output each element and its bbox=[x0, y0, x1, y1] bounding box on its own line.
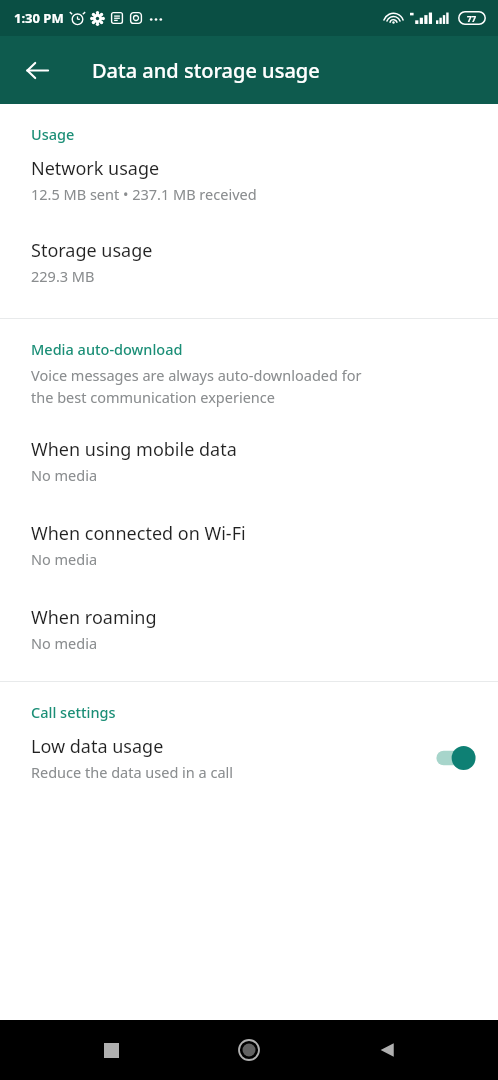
button[interactable]: When roaming bbox=[0, 603, 498, 655]
staticText: Storage usage bbox=[31, 238, 153, 263]
staticText: No media bbox=[31, 633, 98, 653]
button[interactable]: When connected on Wi-Fi bbox=[0, 519, 498, 571]
button[interactable]: When using mobile data bbox=[0, 435, 498, 487]
staticText: Usage bbox=[31, 124, 75, 144]
staticText: When connected on Wi-Fi bbox=[31, 521, 246, 546]
staticText: When using mobile data bbox=[31, 437, 237, 462]
staticText: Call settings bbox=[31, 702, 116, 722]
staticText: 12.5 MB sent • 237.1 MB received bbox=[31, 184, 257, 204]
staticText: No media bbox=[31, 549, 98, 569]
button[interactable]: Network usage bbox=[0, 154, 498, 206]
staticText: When roaming bbox=[31, 605, 157, 630]
button[interactable]: Back bbox=[360, 1023, 414, 1077]
staticText: 77 bbox=[467, 13, 477, 24]
staticText: Voice messages are always auto-downloade… bbox=[31, 365, 362, 385]
button[interactable]: Back bbox=[10, 43, 64, 97]
button[interactable]: Storage usage bbox=[0, 236, 498, 288]
staticText: No media bbox=[31, 465, 98, 485]
staticText: Low data usage bbox=[31, 734, 164, 759]
staticText: Media auto-download bbox=[31, 339, 183, 359]
button[interactable]: Low data usage toggle bbox=[434, 745, 474, 771]
button[interactable]: Low data usage bbox=[0, 732, 498, 784]
staticText: 229.3 MB bbox=[31, 266, 95, 286]
staticText: Network usage bbox=[31, 156, 160, 181]
staticText: 1:30 PM bbox=[14, 9, 64, 27]
staticText: the best communication experience bbox=[31, 387, 275, 407]
button[interactable]: Home bbox=[222, 1023, 276, 1077]
staticText: Data and storage usage bbox=[92, 57, 320, 84]
staticText: Reduce the data used in a call bbox=[31, 762, 234, 782]
button[interactable]: Recent apps bbox=[84, 1023, 138, 1077]
